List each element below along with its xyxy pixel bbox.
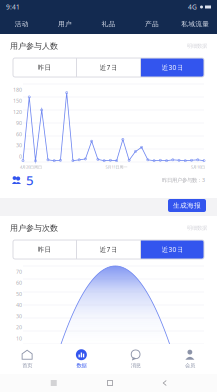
staticText: 40 [16, 301, 22, 309]
staticText: 120 [13, 108, 22, 115]
button[interactable]: 礼品 [87, 14, 130, 34]
button[interactable]: Home [107, 380, 112, 385]
staticText: 近7日 [99, 63, 117, 72]
staticText: 昨日用户参与数：3 [162, 176, 205, 184]
staticText: 5月11日周一 [105, 164, 127, 170]
staticText: 明细数据 [187, 225, 207, 231]
staticText: 60 [16, 279, 22, 286]
button[interactable]: 活动 [0, 14, 43, 34]
staticText: 70 [16, 268, 22, 275]
staticText: 生成海报 [173, 201, 201, 210]
staticText: 近30日 [161, 245, 183, 254]
button[interactable]: 明细数据 [187, 43, 207, 49]
staticText: 产品 [145, 20, 159, 28]
staticText: 昨日 [37, 245, 51, 254]
button[interactable]: 昨日 [13, 58, 76, 77]
button[interactable]: 会员 [163, 349, 217, 369]
staticText: 20 [16, 324, 22, 331]
staticText: 5月10日 [191, 164, 205, 170]
staticText: 用户 [58, 20, 72, 28]
staticText: 9:41 [6, 3, 20, 11]
staticText: 活动 [15, 20, 29, 28]
button[interactable]: 昨日 [13, 240, 76, 259]
staticText: 4G [188, 3, 197, 11]
staticText: 近30日 [161, 63, 183, 72]
button[interactable]: 近30日 [141, 240, 204, 259]
button[interactable]: 明细数据 [187, 225, 207, 231]
staticText: 明细数据 [187, 43, 207, 49]
staticText: 昨日 [37, 63, 51, 72]
button[interactable]: 生成海报 [168, 199, 206, 212]
button[interactable]: Back [163, 380, 166, 385]
button[interactable]: 私域流量 [174, 14, 217, 34]
staticText: 0 [19, 153, 22, 160]
staticText: 用户参与人数 [10, 41, 58, 51]
button[interactable]: 用户 [43, 14, 87, 34]
staticText: 10 [16, 335, 22, 342]
button[interactable]: 产品 [130, 14, 174, 34]
button[interactable]: 近7日 [77, 240, 140, 259]
button[interactable]: 首页 [0, 349, 54, 369]
button[interactable]: 消息 [108, 349, 163, 369]
button[interactable]: 近7日 [77, 58, 140, 77]
staticText: 30 [16, 313, 22, 320]
staticText: 150 [13, 97, 22, 104]
staticText: 近7日 [99, 245, 117, 254]
button[interactable]: 数据 [54, 349, 108, 369]
staticText: 用户参与次数 [10, 223, 58, 233]
staticText: 礼品 [101, 20, 115, 28]
staticText: 私域流量 [181, 20, 209, 28]
staticText: 30 [16, 142, 22, 149]
staticText: 数据 [76, 362, 86, 369]
staticText: 50 [16, 290, 22, 297]
staticText: 会员 [185, 362, 195, 369]
staticText: 5 [26, 171, 34, 189]
staticText: 消息 [131, 362, 141, 369]
staticText: 180 [13, 86, 22, 93]
button[interactable]: Recent apps [51, 380, 57, 385]
staticText: 首页 [22, 362, 32, 369]
staticText: 4月20日周日 [20, 164, 42, 170]
staticText: 60 [16, 131, 22, 138]
button[interactable]: 近30日 [141, 58, 204, 77]
staticText: 90 [16, 119, 22, 127]
